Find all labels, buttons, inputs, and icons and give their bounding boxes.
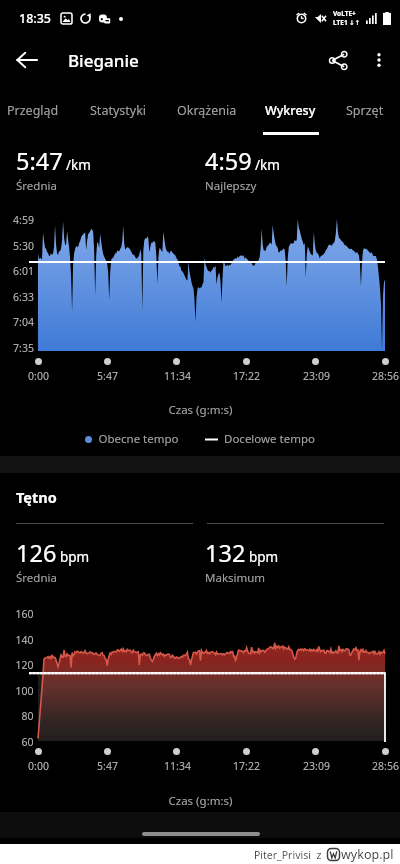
staticText: /km (255, 156, 280, 174)
staticText: 7:35 (13, 341, 34, 355)
staticText: 120 (15, 658, 34, 672)
staticText: 5:47 (97, 369, 118, 383)
staticText: 6:01 (13, 264, 34, 278)
button[interactable]: Share (318, 40, 358, 80)
staticText: 80 (21, 709, 34, 723)
staticText: 5:30 (13, 239, 34, 253)
button[interactable]: Przegląd (0, 86, 75, 134)
staticText: 60 (21, 735, 34, 749)
staticText: Średnia (16, 570, 57, 586)
staticText: LTE1 ↓↑ (333, 18, 361, 27)
staticText: Przegląd (7, 102, 59, 119)
staticText: Maksimum (205, 570, 266, 586)
staticText: Najlepszy (205, 178, 257, 194)
staticText: wykop.pl (341, 846, 394, 863)
staticText: Obecne tempo (98, 431, 179, 447)
staticText: Sprzęt (346, 102, 384, 119)
button[interactable]: Back (8, 41, 46, 79)
button[interactable]: Okrążenia (165, 86, 249, 134)
staticText: bpm (249, 548, 279, 566)
staticText: 11:34 (164, 369, 191, 383)
staticText: 132 (205, 537, 246, 569)
staticText: 0:00 (28, 369, 49, 383)
staticText: 18:35 (19, 10, 52, 27)
staticText: 4:59 (205, 145, 252, 177)
staticText: Tętno (16, 487, 57, 507)
staticText: 160 (15, 607, 34, 621)
staticText: 28:56 (372, 369, 399, 383)
staticText: 126 (16, 537, 57, 569)
staticText: 5:47 (16, 145, 63, 177)
staticText: 6:33 (13, 290, 34, 304)
button[interactable]: More options (359, 40, 399, 80)
staticText: 17:22 (233, 369, 260, 383)
staticText: Docelowe tempo (224, 431, 315, 447)
staticText: 11:34 (164, 759, 191, 773)
staticText: 7:04 (13, 315, 34, 329)
staticText: bpm (60, 548, 90, 566)
staticText: Statystyki (90, 102, 147, 119)
staticText: Wykresy (265, 102, 316, 119)
staticText: Czas (g:m:s) (168, 402, 233, 418)
button[interactable]: Wykresy (248, 86, 332, 134)
staticText: 4:59 (13, 213, 34, 227)
staticText: Średnia (16, 178, 57, 194)
staticText: 28:56 (372, 759, 399, 773)
staticText: 23:09 (303, 369, 330, 383)
staticText: Piter_Privisi z (254, 848, 322, 862)
staticText: Bieganie (68, 49, 139, 72)
button[interactable]: Sprzęt (323, 86, 400, 134)
staticText: 5:47 (97, 759, 118, 773)
button[interactable]: Statystyki (76, 86, 160, 134)
staticText: 140 (15, 633, 34, 647)
staticText: Czas (g:m:s) (168, 793, 233, 809)
staticText: Okrążenia (177, 102, 237, 119)
staticText: 100 (15, 684, 34, 698)
staticText: 23:09 (303, 759, 330, 773)
staticText: 0:00 (28, 759, 49, 773)
staticText: VoLTE+ (333, 9, 356, 18)
staticText: 17:22 (233, 759, 260, 773)
staticText: /km (66, 156, 91, 174)
